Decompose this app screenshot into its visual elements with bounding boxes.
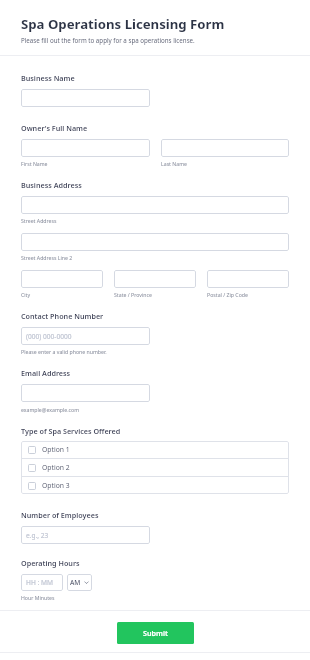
staticText: Owner's Full Name <box>21 123 88 133</box>
staticText: State / Province <box>114 291 152 298</box>
staticText: Option 3 <box>42 481 70 490</box>
staticText: Business Name <box>21 73 75 83</box>
staticText: AM <box>70 578 81 587</box>
button[interactable] <box>21 384 150 402</box>
staticText: Option 2 <box>42 463 70 472</box>
staticText: Please enter a valid phone number. <box>21 348 107 355</box>
button[interactable] <box>21 196 289 214</box>
staticText: Last Name <box>161 160 187 167</box>
staticText: Email Address <box>21 368 71 378</box>
staticText: Submit <box>143 628 168 638</box>
button[interactable] <box>207 270 289 288</box>
staticText: Operating Hours <box>21 558 80 568</box>
staticText: example@example.com <box>21 406 80 413</box>
staticText: Contact Phone Number <box>21 311 104 321</box>
staticText: Street Address <box>21 217 57 224</box>
staticText: e.g., 23 <box>26 531 49 540</box>
staticText: Street Address Line 2 <box>21 254 73 261</box>
button[interactable] <box>114 270 196 288</box>
staticText: Spa Operations Licensing Form <box>21 15 225 33</box>
staticText: Number of Employees <box>21 510 99 520</box>
staticText: Postal / Zip Code <box>207 291 248 298</box>
staticText: Hour Minutes <box>21 594 55 601</box>
button[interactable]: Option 2 <box>21 459 289 476</box>
staticText: City <box>21 291 31 298</box>
button[interactable] <box>21 89 150 107</box>
button[interactable]: HH : MM <box>21 574 63 591</box>
staticText: HH : MM <box>26 578 53 587</box>
staticText: Type of Spa Services Offered <box>21 426 121 436</box>
button[interactable]: Submit <box>117 622 194 644</box>
staticText: First Name <box>21 160 48 167</box>
staticText: Business Address <box>21 180 82 190</box>
button[interactable]: Select AM or PM <box>67 574 92 591</box>
button[interactable] <box>21 139 150 157</box>
button[interactable]: Option 3 <box>21 477 289 494</box>
button[interactable]: Option 1 <box>21 441 289 458</box>
button[interactable] <box>21 233 289 251</box>
staticText: (000) 000-0000 <box>26 332 72 341</box>
button[interactable]: (000) 000-0000 <box>21 327 150 345</box>
button[interactable]: e.g., 23 <box>21 526 150 544</box>
button[interactable] <box>21 270 103 288</box>
staticText: Option 1 <box>42 445 70 454</box>
staticText: Please fill out the form to apply for a … <box>21 36 195 44</box>
button[interactable] <box>161 139 289 157</box>
